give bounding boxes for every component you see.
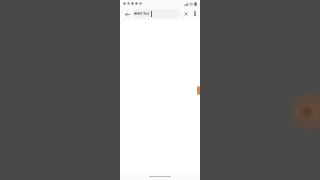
button[interactable]: Back <box>122 9 132 19</box>
button[interactable]: Clear search <box>181 9 190 18</box>
button[interactable]: жесты <box>132 9 180 18</box>
staticText: жесты <box>134 10 150 17</box>
button[interactable]: More options <box>190 9 199 18</box>
